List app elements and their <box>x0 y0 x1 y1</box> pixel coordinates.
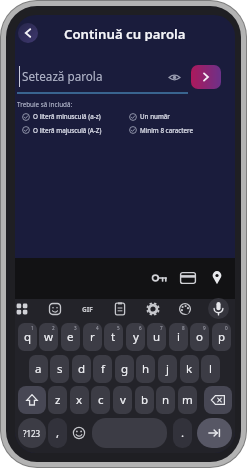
button[interactable]: y <box>126 323 145 351</box>
staticText: i <box>177 329 180 345</box>
button[interactable] <box>44 298 66 320</box>
staticText: O literă majusculă (A-Z) <box>33 126 102 135</box>
button[interactable]: k <box>180 355 199 383</box>
button[interactable]: t <box>104 323 123 351</box>
button[interactable] <box>92 418 167 448</box>
staticText: 1 <box>31 325 34 331</box>
staticText: j <box>166 361 169 377</box>
button[interactable]: z <box>48 386 67 414</box>
staticText: l <box>209 361 212 377</box>
staticText: 5 <box>117 325 120 331</box>
staticText: Trebuie să includă: <box>17 100 73 109</box>
button[interactable]: p <box>212 323 231 351</box>
button[interactable] <box>208 298 229 319</box>
button[interactable]: d <box>72 355 91 383</box>
button[interactable] <box>69 423 89 443</box>
button[interactable]: v <box>113 386 132 414</box>
staticText: z <box>55 392 61 408</box>
button[interactable] <box>150 268 170 288</box>
button[interactable]: o <box>190 323 209 351</box>
staticText: g <box>121 361 129 377</box>
staticText: d <box>78 361 86 377</box>
staticText: 6 <box>139 325 142 331</box>
button[interactable] <box>207 268 227 288</box>
button[interactable] <box>18 386 46 414</box>
staticText: r <box>90 329 95 345</box>
staticText: q <box>24 329 32 345</box>
button[interactable]: l <box>201 355 220 383</box>
button[interactable]: x <box>70 386 89 414</box>
staticText: 7 <box>160 325 163 331</box>
button[interactable]: f <box>93 355 112 383</box>
button[interactable]: GIF <box>76 298 98 320</box>
staticText: Un număr <box>140 112 170 121</box>
button[interactable]: ?123 <box>18 418 46 448</box>
button[interactable]: b <box>135 386 154 414</box>
staticText: 4 <box>96 325 99 331</box>
button[interactable]: i <box>169 323 188 351</box>
staticText: ?123 <box>23 428 41 439</box>
staticText: Continuă cu parola <box>64 25 186 41</box>
button[interactable]: h <box>136 355 155 383</box>
button[interactable]: r <box>83 323 102 351</box>
staticText: t <box>111 329 116 345</box>
button[interactable] <box>197 418 232 448</box>
button[interactable]: u <box>147 323 166 351</box>
staticText: c <box>98 392 104 408</box>
button[interactable]: g <box>115 355 134 383</box>
staticText: Minim 8 caractere <box>140 126 194 135</box>
staticText: s <box>57 361 63 377</box>
button[interactable]: s <box>50 355 69 383</box>
staticText: Setează parola <box>22 68 103 84</box>
staticText: O literă minusculă (a-z) <box>33 112 101 121</box>
button[interactable]: w <box>39 323 58 351</box>
button[interactable] <box>167 70 182 85</box>
staticText: GIF <box>82 305 93 314</box>
button[interactable]: q <box>18 323 37 351</box>
staticText: a <box>35 361 42 377</box>
button[interactable]: a <box>29 355 48 383</box>
button[interactable] <box>178 268 198 288</box>
staticText: w <box>44 329 54 345</box>
button[interactable]: j <box>158 355 177 383</box>
button[interactable] <box>204 386 232 414</box>
button[interactable]: e <box>61 323 80 351</box>
staticText: p <box>218 329 226 345</box>
button[interactable]: n <box>156 386 175 414</box>
button[interactable] <box>109 298 131 320</box>
staticText: 2 <box>52 325 55 331</box>
staticText: o <box>196 329 203 345</box>
staticText: h <box>142 361 150 377</box>
button[interactable] <box>142 298 164 320</box>
staticText: 8 <box>182 325 185 331</box>
staticText: b <box>141 392 149 408</box>
staticText: u <box>153 329 161 345</box>
button[interactable] <box>15 298 33 320</box>
staticText: 0 <box>225 325 228 331</box>
button[interactable] <box>191 65 221 89</box>
staticText: m <box>182 392 193 408</box>
button[interactable]: c <box>91 386 110 414</box>
staticText: k <box>186 361 193 377</box>
staticText: , <box>56 425 60 441</box>
button[interactable]: . <box>173 418 192 448</box>
staticText: n <box>162 392 170 408</box>
button[interactable] <box>174 298 196 320</box>
button[interactable]: m <box>178 386 197 414</box>
button[interactable]: , <box>48 418 67 448</box>
staticText: y <box>133 329 139 345</box>
staticText: . <box>181 425 185 441</box>
button[interactable] <box>18 23 38 43</box>
staticText: v <box>120 392 126 408</box>
staticText: e <box>67 329 74 345</box>
staticText: x <box>76 392 83 408</box>
staticText: f <box>101 361 105 377</box>
staticText: 3 <box>74 325 77 331</box>
staticText: 9 <box>203 325 206 331</box>
